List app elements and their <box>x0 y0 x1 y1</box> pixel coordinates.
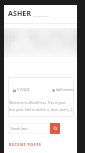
staticText: Add Comment <box>56 88 74 92</box>
button[interactable]: Search here ... <box>9 123 50 134</box>
button[interactable]: Add Comment <box>52 88 74 92</box>
staticText: ASHER <box>8 9 32 19</box>
staticText: first post. Edit or delete it, then star… <box>9 107 73 112</box>
button[interactable]: Search <box>50 123 60 134</box>
button[interactable]: 5/10/2024 <box>13 88 30 92</box>
button[interactable]: RECENT POSTS <box>9 142 42 147</box>
staticText: Welcome to WordPress. This is your <box>9 100 66 105</box>
button[interactable]: ASHER <box>8 9 49 19</box>
staticText: 5/10/2024 <box>17 88 30 92</box>
staticText: lifestyle blog <box>33 15 49 18</box>
staticText: Search here ... <box>11 127 31 131</box>
